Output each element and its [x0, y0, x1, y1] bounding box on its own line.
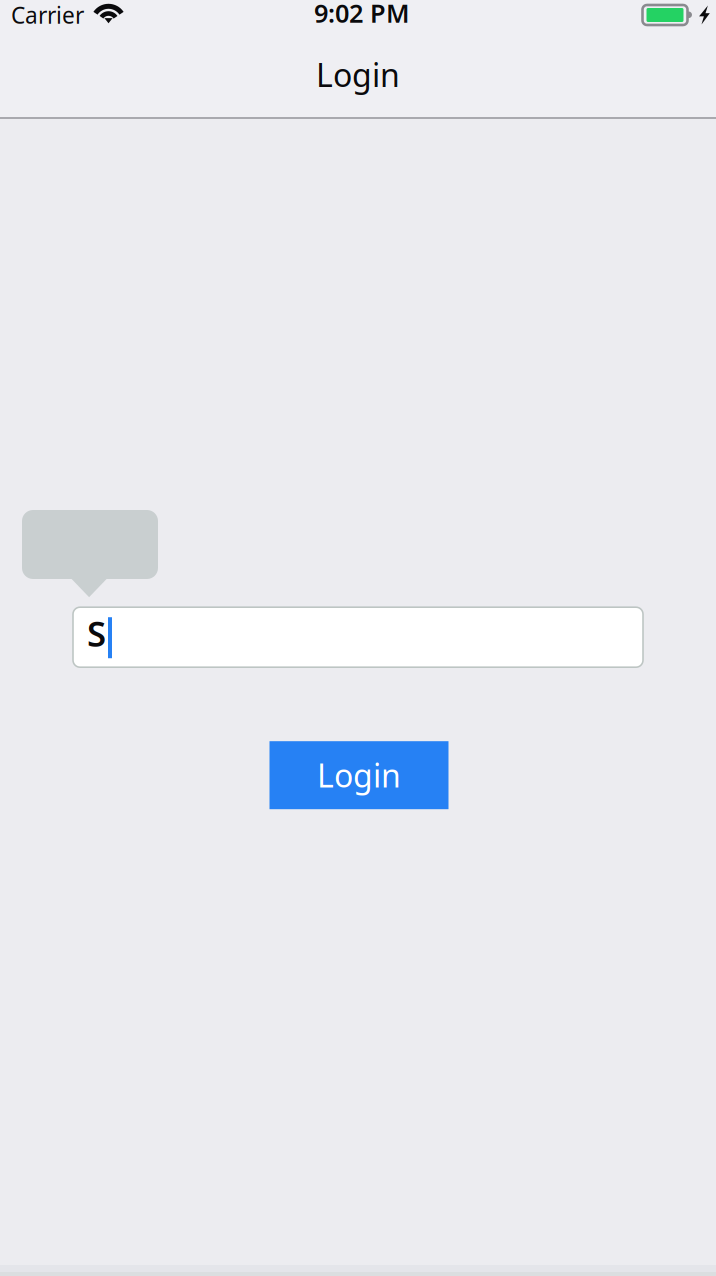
button[interactable]: Username: [73, 607, 643, 667]
staticText: 9:02 PM: [314, 0, 410, 30]
staticText: Login: [317, 754, 401, 796]
staticText: S: [87, 610, 106, 656]
button[interactable]: Login: [269, 741, 448, 809]
staticText: Login: [316, 53, 400, 96]
staticText: Carrier: [11, 0, 84, 30]
